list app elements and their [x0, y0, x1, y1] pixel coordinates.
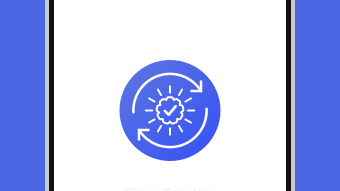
staticText: Time Tracker [123, 183, 216, 191]
